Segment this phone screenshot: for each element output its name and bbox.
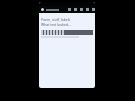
staticText: Poem, stuff, labels	[41, 17, 71, 22]
button[interactable]: Profile	[41, 8, 44, 11]
staticText: What text looked...	[41, 22, 71, 27]
